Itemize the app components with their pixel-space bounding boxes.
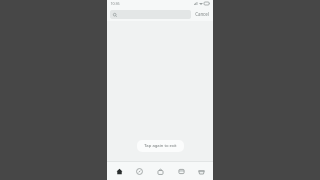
staticText: Tap again to exit — [144, 143, 177, 149]
button[interactable]: Account — [192, 162, 210, 180]
button[interactable]: Cart — [151, 162, 169, 180]
button[interactable]: Home — [110, 162, 128, 180]
button[interactable]: Categories — [130, 162, 148, 180]
button[interactable]: Orders — [172, 162, 190, 180]
staticText: Cancel — [195, 11, 209, 17]
button[interactable] — [110, 10, 191, 19]
staticText: 10:36 — [110, 1, 120, 6]
button[interactable]: Cancel — [194, 9, 210, 19]
